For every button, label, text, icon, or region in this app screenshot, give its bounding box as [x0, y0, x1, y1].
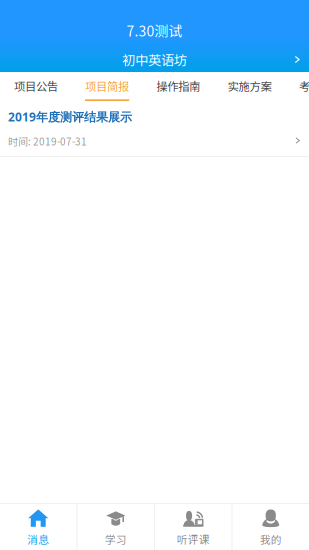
staticText: 消息 — [27, 531, 49, 547]
staticText: 项目简报 — [85, 77, 129, 94]
button[interactable]: 2019年度测评结果展示 — [0, 101, 309, 156]
button[interactable]: 消息 — [0, 504, 76, 550]
staticText: 2019年度测评结果展示 — [8, 109, 132, 125]
button[interactable]: 听评课 — [155, 504, 231, 550]
staticText: 听评课 — [177, 531, 210, 547]
staticText: 初中英语坊 — [122, 50, 187, 69]
button[interactable]: 我的 — [232, 504, 309, 550]
button[interactable]: 考核办法 — [285, 72, 309, 101]
staticText: 项目公告 — [14, 77, 58, 94]
staticText: 时间: 2019-07-31 — [8, 134, 87, 148]
button[interactable]: 初中英语坊 — [0, 47, 309, 72]
staticText: 操作指南 — [156, 77, 200, 94]
staticText: 考核办法 — [299, 77, 309, 94]
button[interactable]: 项目简报 — [71, 72, 143, 101]
button[interactable]: 学习 — [77, 504, 154, 550]
button[interactable]: 项目公告 — [0, 72, 71, 101]
button[interactable]: 实施方案 — [214, 72, 285, 101]
staticText: 实施方案 — [227, 77, 271, 94]
staticText: 学习 — [105, 531, 127, 547]
staticText: 7.30测试 — [126, 20, 182, 41]
button[interactable]: 操作指南 — [143, 72, 214, 101]
staticText: 我的 — [260, 531, 282, 547]
